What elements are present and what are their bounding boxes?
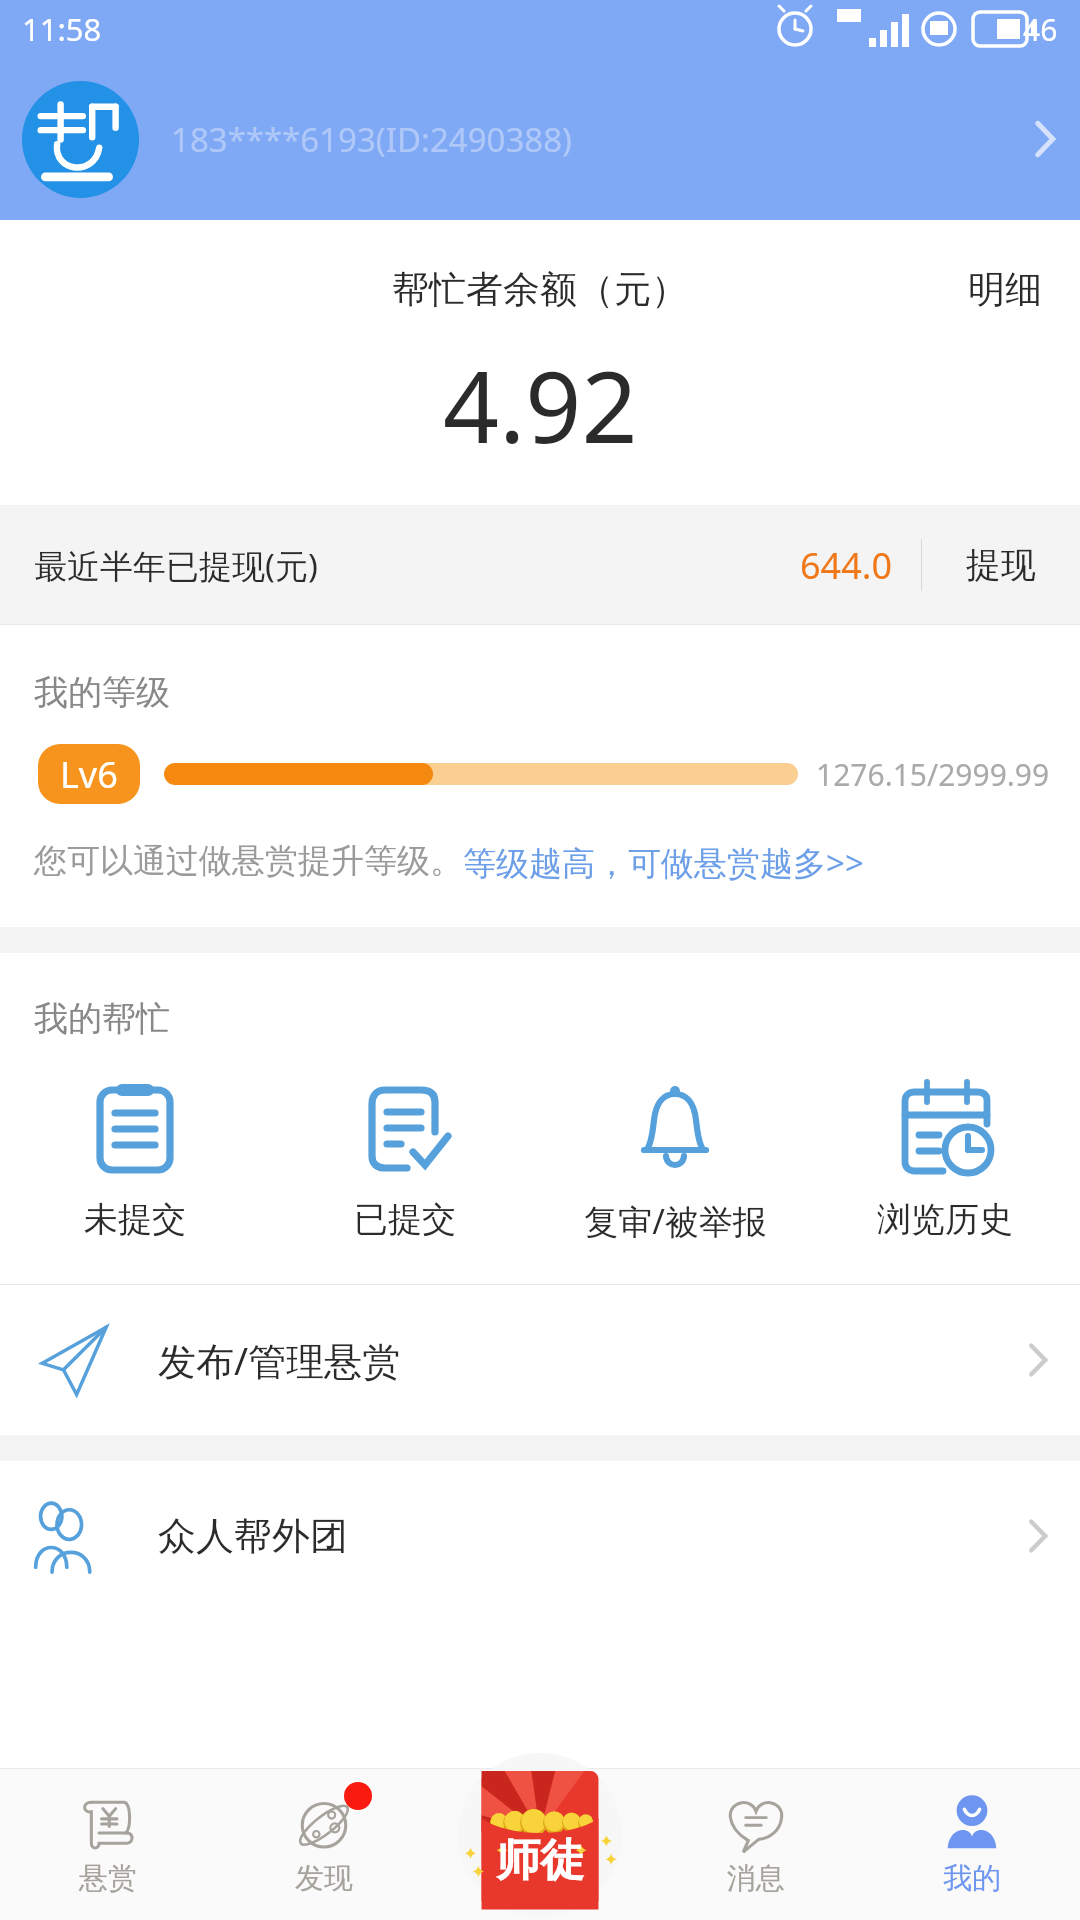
button[interactable]: 发现: [216, 1768, 432, 1920]
staticText: 等级越高，可做悬赏越多>>: [463, 840, 864, 885]
button[interactable]: 等级越高，可做悬赏越多>>: [463, 840, 864, 885]
staticText: 明细: [968, 266, 1042, 313]
staticText: 您可以通过做悬赏提升等级。: [34, 840, 463, 882]
button[interactable]: 183****6193(ID:2490388): [0, 58, 1080, 220]
button[interactable]: 消息: [648, 1768, 864, 1920]
staticText: 11:58: [22, 8, 102, 50]
staticText: 183****6193(ID:2490388): [171, 117, 572, 162]
button[interactable]: 我的: [864, 1768, 1080, 1920]
button[interactable]: 已提交: [270, 1070, 540, 1249]
staticText: 提现: [966, 543, 1036, 587]
staticText: 师徒: [496, 1833, 584, 1888]
staticText: 我的: [943, 1860, 1001, 1897]
button[interactable]: 明细: [944, 246, 1066, 333]
button[interactable]: 发布/管理悬赏: [0, 1285, 1080, 1435]
staticText: Lv6: [60, 750, 118, 799]
button[interactable]: Lv6: [38, 744, 140, 804]
button[interactable]: 复审/被举报: [540, 1070, 810, 1252]
staticText: 最近半年已提现(元): [34, 543, 318, 588]
staticText: 我的帮忙: [34, 997, 170, 1040]
button[interactable]: 提现: [922, 511, 1080, 619]
button[interactable]: 未提交: [0, 1070, 270, 1249]
staticText: 复审/被举报: [584, 1198, 767, 1244]
staticText: 消息: [727, 1860, 785, 1897]
staticText: 我的等级: [34, 671, 170, 714]
staticText: 悬赏: [79, 1860, 137, 1897]
staticText: 浏览历史: [877, 1198, 1013, 1241]
staticText: 644.0: [800, 541, 893, 590]
staticText: 发布/管理悬赏: [158, 1334, 401, 1386]
staticText: 46: [1023, 9, 1058, 50]
staticText: 众人帮外团: [158, 1512, 348, 1560]
button[interactable]: 众人帮外团: [0, 1461, 1080, 1611]
staticText: 已提交: [354, 1198, 456, 1241]
staticText: 发现: [295, 1860, 353, 1897]
staticText: 1276.15/2999.99: [816, 754, 1050, 795]
button[interactable]: 浏览历史: [810, 1070, 1080, 1249]
button[interactable]: 师徒红包: [461, 1762, 619, 1914]
staticText: 帮忙者余额（元）: [392, 266, 688, 313]
button[interactable]: 悬赏: [0, 1768, 216, 1920]
staticText: 4.92: [443, 338, 638, 471]
staticText: 未提交: [84, 1198, 186, 1241]
